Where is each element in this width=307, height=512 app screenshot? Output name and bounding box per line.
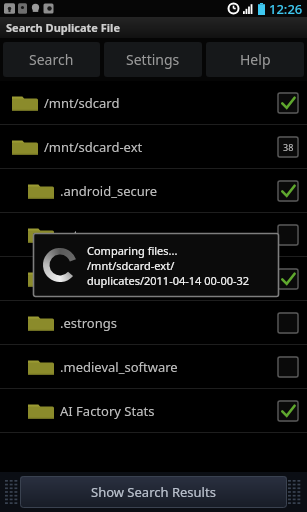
button[interactable]: /mnt/sdcard — [0, 81, 307, 124]
button[interactable]: Select — [277, 224, 299, 246]
staticText: /mnt/sdcard-ext/ — [87, 258, 175, 273]
staticText: Settings — [126, 50, 180, 69]
staticText: /mnt/sdcard-ext — [44, 138, 273, 156]
button[interactable]: Selected — [277, 92, 299, 114]
button[interactable]: Select — [277, 356, 299, 378]
staticText: AI Factory Stats — [60, 402, 273, 420]
button[interactable]: Select — [277, 312, 299, 334]
button[interactable]: Selected — [277, 400, 299, 422]
button[interactable]: Help — [206, 42, 304, 77]
button[interactable]: AI Factory Stats — [0, 389, 307, 432]
staticText: .medieval_software — [60, 358, 273, 376]
staticText: duplicates/2011-04-14 00-00-32 — [87, 273, 250, 288]
staticText: Help — [240, 50, 271, 69]
staticText: astro — [60, 226, 273, 244]
staticText: Search Duplicate File — [6, 20, 120, 35]
button[interactable]: Selected — [277, 180, 299, 202]
button[interactable]: Settings — [104, 42, 202, 77]
button[interactable]: .android_secure — [0, 169, 307, 212]
staticText: 12:26 — [269, 0, 303, 17]
button[interactable]: .doodlemobile_featureviewnew — [0, 257, 307, 300]
button[interactable]: astro — [0, 213, 307, 256]
staticText: Search — [29, 50, 74, 69]
button[interactable]: .estrongs — [0, 301, 307, 344]
staticText: 38 — [283, 141, 294, 153]
staticText: Comparing files... — [87, 243, 178, 258]
button[interactable]: Search — [3, 42, 100, 77]
button[interactable]: Show Search Results — [20, 476, 287, 508]
staticText: Show Search Results — [91, 483, 216, 501]
staticText: .android_secure — [60, 182, 273, 200]
staticText: .doodlemobile_featureviewnew — [60, 270, 273, 288]
staticText: /mnt/sdcard — [44, 94, 273, 112]
button[interactable]: /mnt/sdcard-ext — [0, 125, 307, 168]
staticText: .estrongs — [60, 314, 273, 332]
button[interactable]: Selected — [277, 268, 299, 290]
button[interactable]: Select — [277, 136, 299, 158]
button[interactable]: .medieval_software — [0, 345, 307, 388]
